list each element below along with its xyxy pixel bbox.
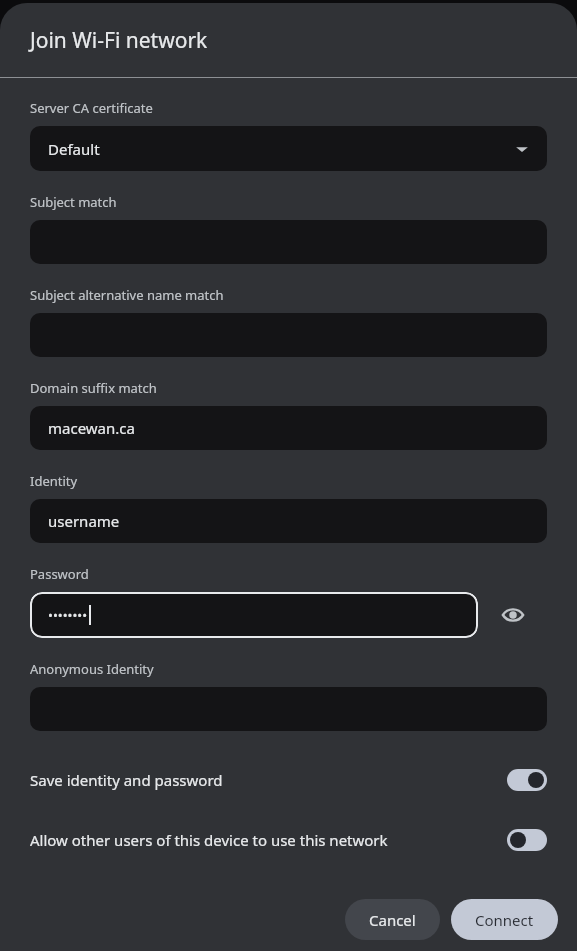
button[interactable]: Save identity and password (30, 763, 547, 797)
button[interactable]: Allow other users of this device to use … (30, 823, 547, 857)
button[interactable]: •••••••• (30, 592, 478, 638)
staticText: Default (48, 139, 100, 159)
staticText: Password (30, 565, 89, 583)
staticText: username (48, 511, 120, 531)
staticText: Save identity and password (30, 770, 507, 790)
staticText: Allow other users of this device to use … (30, 830, 507, 850)
staticText: Connect (475, 910, 534, 930)
button[interactable]: Default (30, 126, 547, 171)
staticText: Subject alternative name match (30, 286, 224, 304)
button[interactable]: macewan.ca (30, 406, 547, 450)
staticText: Cancel (369, 910, 416, 930)
button[interactable]: username (30, 499, 547, 543)
staticText: macewan.ca (48, 418, 135, 438)
staticText: Subject match (30, 193, 117, 211)
button[interactable]: Cancel (345, 899, 440, 940)
staticText: Join Wi-Fi network (30, 26, 208, 55)
staticText: Domain suffix match (30, 379, 157, 397)
button[interactable]: Show password (478, 592, 547, 638)
staticText: Identity (30, 472, 78, 490)
staticText: •••••••• (48, 606, 88, 624)
button[interactable]: Off (507, 829, 547, 851)
staticText: Anonymous Identity (30, 660, 154, 678)
button[interactable]: Connect (451, 899, 558, 940)
staticText: Server CA certificate (30, 99, 153, 117)
button[interactable]: On (507, 769, 547, 791)
